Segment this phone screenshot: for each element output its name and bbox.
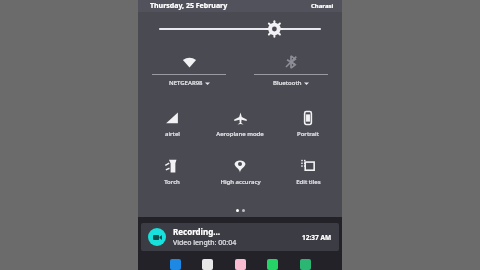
staticText: 12:37 AM: [302, 233, 332, 242]
button[interactable]: Brightness: [138, 18, 342, 40]
staticText: Portrait: [297, 130, 319, 138]
button[interactable]: Bluetooth: [240, 50, 342, 94]
button[interactable]: airtel: [138, 108, 206, 140]
staticText: airtel: [165, 130, 180, 138]
button[interactable]: Recording…: [141, 223, 339, 251]
button[interactable]: Dice: [235, 259, 246, 270]
staticText: Edit tiles: [296, 178, 321, 186]
button[interactable]: Phone: [170, 259, 181, 270]
staticText: NETGEAR98: [169, 79, 203, 87]
button[interactable]: High accuracy: [206, 156, 274, 188]
button[interactable]: WhatsApp: [267, 259, 278, 270]
staticText: Video length: 00:04: [173, 238, 237, 248]
button[interactable]: Chrome: [202, 259, 213, 270]
staticText: Torch: [164, 178, 180, 186]
button[interactable]: Portrait: [274, 108, 342, 140]
button[interactable]: Edit tiles: [274, 156, 342, 188]
button[interactable]: NETGEAR98: [138, 50, 240, 94]
staticText: Charasi: [311, 2, 334, 10]
button[interactable]: Torch: [138, 156, 206, 188]
staticText: Bluetooth: [273, 79, 302, 87]
staticText: Thursday, 25 February: [150, 1, 228, 11]
staticText: Recording…: [173, 226, 221, 237]
button[interactable]: Messages: [300, 259, 311, 270]
button[interactable]: Aeroplane mode: [206, 108, 274, 140]
staticText: High accuracy: [220, 178, 261, 186]
staticText: Aeroplane mode: [216, 130, 264, 138]
